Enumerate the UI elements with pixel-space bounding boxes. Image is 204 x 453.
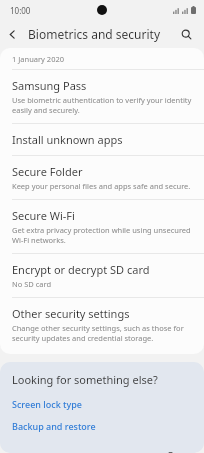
button[interactable]: Samsung Pass xyxy=(0,69,204,123)
button[interactable]: Encrypt or decrypt SD card xyxy=(0,253,204,297)
staticText: Secure Folder xyxy=(12,164,83,179)
staticText: Use biometric authentication to verify y… xyxy=(12,95,192,115)
button[interactable]: Backup and restore xyxy=(0,415,204,437)
staticText: Other security settings xyxy=(12,306,130,321)
staticText: Install unknown apps xyxy=(12,132,123,147)
button[interactable]: Secure Folder xyxy=(0,155,204,199)
staticText: Biometrics and security xyxy=(28,26,161,42)
button[interactable]: Back xyxy=(0,22,24,46)
staticText: Get extra privacy protection while using… xyxy=(12,225,191,245)
staticText: Looking for something else? xyxy=(12,372,158,387)
staticText: Backup and restore xyxy=(12,420,96,432)
staticText: No SD card xyxy=(12,279,52,289)
staticText: Screen lock type xyxy=(12,398,82,410)
staticText: 1 January 2020 xyxy=(12,54,65,64)
button[interactable]: Secure Wi-Fi xyxy=(0,199,204,253)
staticText: Samsung Pass xyxy=(12,78,87,93)
staticText: Change other security settings, such as … xyxy=(12,323,184,343)
button[interactable]: Screen lock type xyxy=(0,393,204,415)
staticText: Keep your personal files and apps safe a… xyxy=(12,181,191,191)
staticText: Secure Wi-Fi xyxy=(12,208,75,223)
button[interactable]: Install unknown apps xyxy=(0,123,204,155)
button[interactable]: Search xyxy=(174,22,198,46)
staticText: Encrypt or decrypt SD card xyxy=(12,262,150,277)
staticText: 10:00 xyxy=(10,5,31,16)
button[interactable]: Other security settings xyxy=(0,297,204,351)
